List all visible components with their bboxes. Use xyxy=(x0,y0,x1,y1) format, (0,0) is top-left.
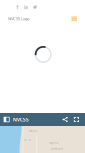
staticText: JEFFERSON xyxy=(51,147,63,150)
staticText: NVCSS Logo xyxy=(8,16,29,21)
button[interactable]: Facebook xyxy=(15,4,20,10)
button[interactable]: Twitter xyxy=(32,4,38,10)
button[interactable]: Fullscreen xyxy=(73,116,79,123)
button[interactable]: LinkedIn xyxy=(23,4,29,10)
button[interactable]: Layout xyxy=(3,116,10,123)
button[interactable]: NVCSS Logo xyxy=(8,16,29,21)
staticText: N 1st xyxy=(24,138,31,141)
staticText: Santa C xyxy=(29,129,38,132)
staticText: NVCSS xyxy=(13,116,29,123)
button[interactable]: Share xyxy=(62,116,68,123)
staticText: Laguna xyxy=(49,141,58,144)
button[interactable]: Menu xyxy=(71,16,78,22)
